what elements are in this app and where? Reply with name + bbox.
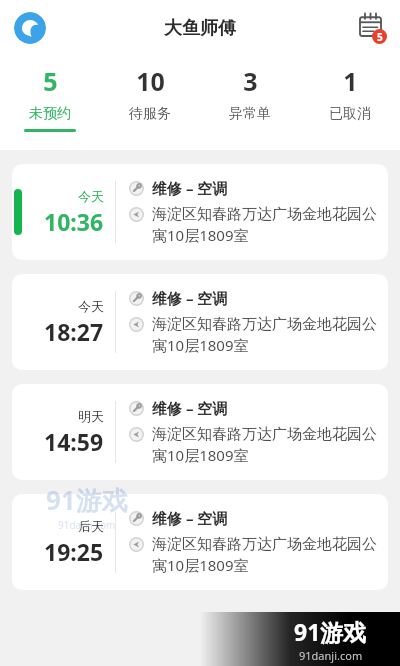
staticText: 海淀区知春路万达广场金地花园公寓10层1809室	[152, 425, 378, 466]
staticText: 14:59	[44, 426, 104, 457]
staticText: 18:27	[44, 316, 104, 347]
button[interactable]: 今天	[12, 164, 388, 260]
staticText: 5	[43, 64, 58, 98]
staticText: 91游戏	[46, 482, 128, 518]
staticText: 海淀区知春路万达广场金地花园公寓10层1809室	[152, 205, 378, 246]
staticText: 未预约	[29, 105, 71, 123]
staticText: 10:36	[44, 206, 104, 237]
staticText: 海淀区知春路万达广场金地花园公寓10层1809室	[152, 315, 378, 356]
staticText: 维修 – 空调	[152, 398, 228, 418]
staticText: 今天	[78, 298, 104, 314]
button[interactable]: 明天	[12, 384, 388, 480]
button[interactable]: 3	[200, 56, 300, 132]
staticText: 大鱼师傅	[164, 17, 236, 40]
button[interactable]: App logo	[14, 12, 46, 44]
staticText: 异常单	[229, 105, 271, 123]
staticText: 1	[343, 64, 358, 98]
staticText: 91游戏	[294, 616, 367, 647]
staticText: 维修 – 空调	[152, 178, 228, 198]
button[interactable]: 1	[300, 56, 400, 132]
staticText: 明天	[78, 408, 104, 424]
staticText: 5	[377, 30, 383, 44]
staticText: 维修 – 空调	[152, 288, 228, 308]
staticText: 3	[243, 64, 258, 98]
button[interactable]: 今天	[12, 274, 388, 370]
staticText: 后天	[78, 518, 104, 534]
staticText: 10	[136, 64, 165, 98]
button[interactable]: Calendar, 5 notifications	[352, 10, 388, 46]
staticText: 91danji.com	[299, 648, 363, 663]
button[interactable]: 后天	[12, 494, 388, 590]
button[interactable]: 5	[0, 56, 100, 132]
staticText: 91danji.com	[58, 518, 116, 532]
staticText: 今天	[78, 188, 104, 204]
staticText: 19:25	[44, 536, 104, 567]
staticText: 已取消	[329, 105, 371, 123]
staticText: 海淀区知春路万达广场金地花园公寓10层1809室	[152, 535, 378, 576]
button[interactable]: 10	[100, 56, 200, 132]
staticText: 维修 – 空调	[152, 508, 228, 528]
staticText: 待服务	[129, 105, 171, 123]
